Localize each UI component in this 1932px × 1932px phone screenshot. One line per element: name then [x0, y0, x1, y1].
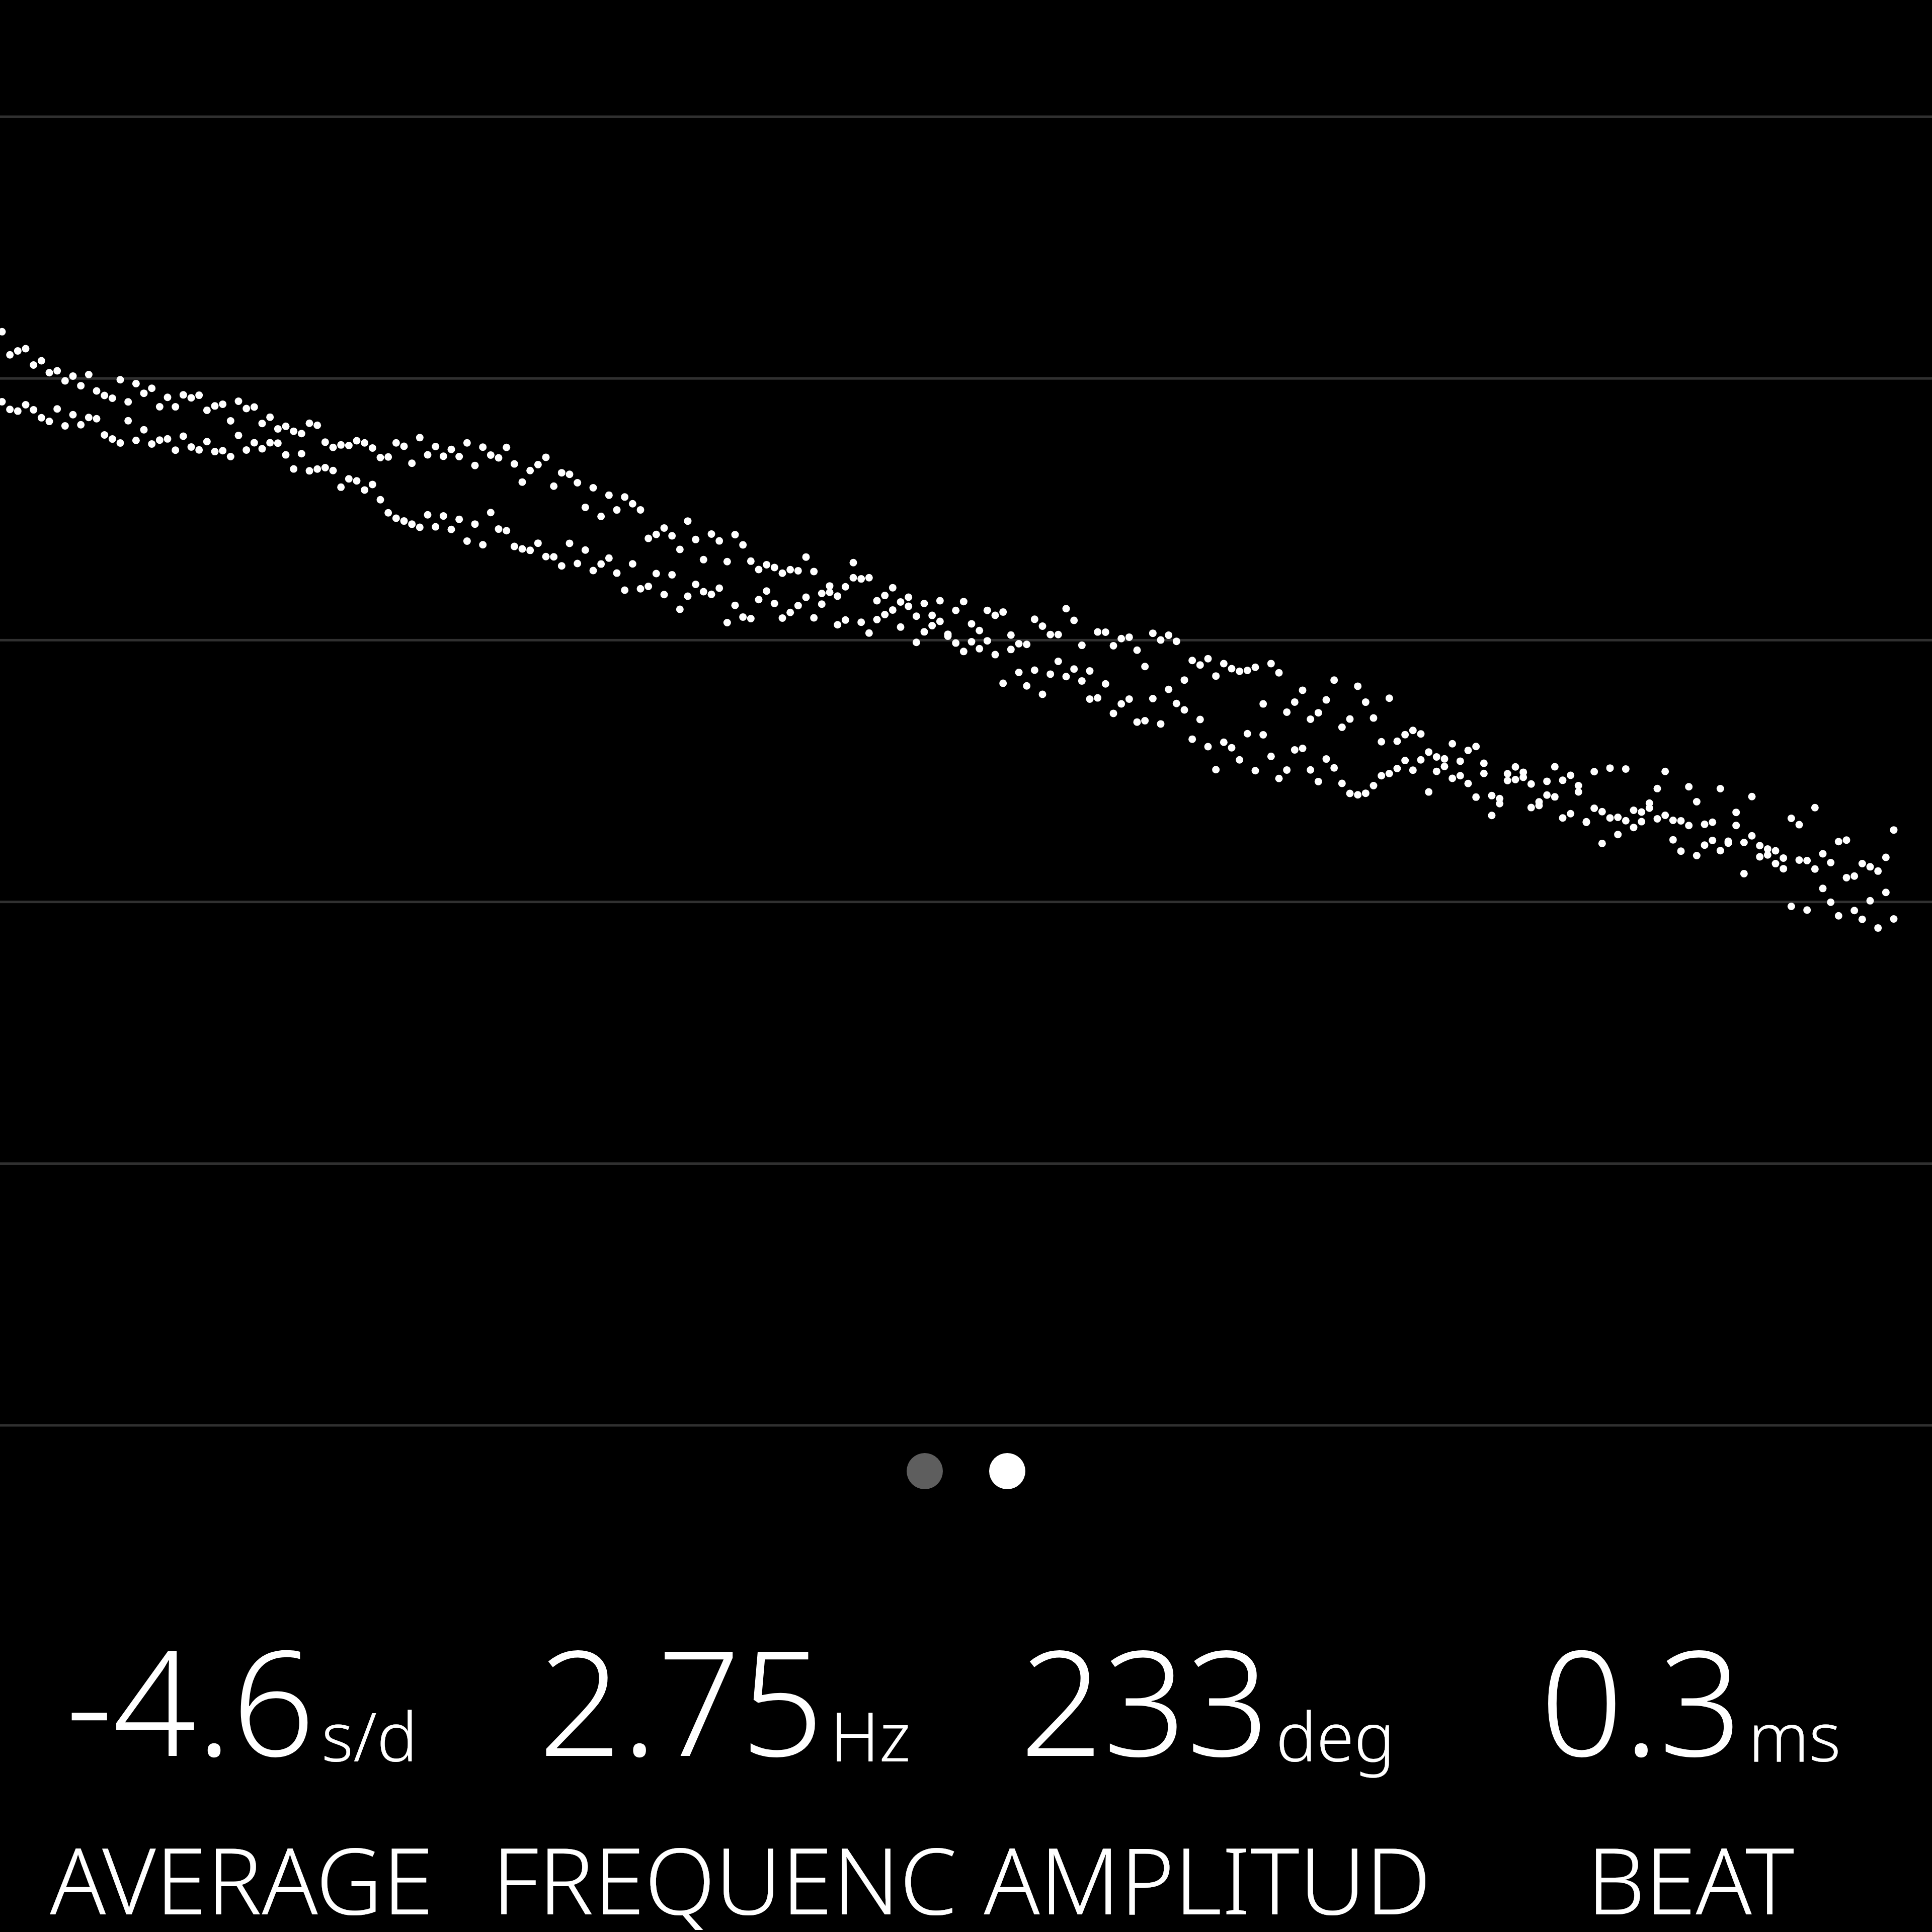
- staticText: ms: [1748, 1689, 1841, 1782]
- staticText: deg: [1276, 1689, 1395, 1782]
- staticText: -4.6: [66, 1600, 315, 1799]
- staticText: s/d: [321, 1689, 418, 1782]
- button[interactable]: 233: [966, 1600, 1449, 1932]
- staticText: Hz: [830, 1689, 911, 1782]
- button[interactable]: 0.3: [1449, 1600, 1932, 1932]
- staticText: 2.75: [538, 1600, 824, 1799]
- staticText: FREQUENCY: [483, 1816, 966, 1932]
- staticText: AVERAGE: [50, 1816, 434, 1932]
- staticText: BEAT ERROR: [1449, 1816, 1932, 1932]
- button[interactable]: -4.6: [0, 1600, 483, 1932]
- staticText: 0.3: [1540, 1600, 1742, 1799]
- staticText: AMPLITUDE: [966, 1816, 1449, 1932]
- staticText: 233: [1020, 1600, 1270, 1799]
- button[interactable]: Rate trace graph: [0, 0, 1932, 1444]
- button[interactable]: 2.75: [483, 1600, 966, 1932]
- button[interactable]: Page indicator: [895, 1448, 1037, 1494]
